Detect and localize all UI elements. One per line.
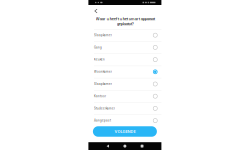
staticText: Waar u heeft u het smart apparaat geplaa… [95, 16, 154, 26]
staticText: Kantoor [94, 94, 106, 98]
button[interactable]: Keuken [88, 53, 161, 66]
button[interactable]: Gang [88, 41, 161, 53]
staticText: Studeerkamer [94, 107, 115, 110]
button[interactable]: VOLGENDE [93, 126, 157, 137]
button[interactable]: Aangepast [88, 114, 161, 127]
staticText: Keuken [94, 58, 105, 61]
button[interactable]: Woonkamer [88, 66, 161, 78]
button[interactable]: Back [103, 142, 112, 150]
staticText: VOLGENDE [114, 129, 135, 134]
staticText: Slaapkamer [94, 33, 112, 37]
button[interactable]: Studeerkamer [88, 102, 161, 114]
button[interactable]: Kantoor [88, 90, 161, 102]
staticText: Slaapkamer [94, 82, 112, 86]
button[interactable]: Slaapkamer [88, 29, 161, 41]
button[interactable]: Back [91, 6, 100, 15]
button[interactable]: Recent apps [138, 142, 147, 150]
button[interactable]: Slaapkamer [88, 78, 161, 90]
staticText: Gang [94, 46, 102, 49]
staticText: Woonkamer [94, 70, 112, 73]
staticText: Aangepast [94, 119, 111, 122]
button[interactable]: Home [120, 142, 129, 150]
